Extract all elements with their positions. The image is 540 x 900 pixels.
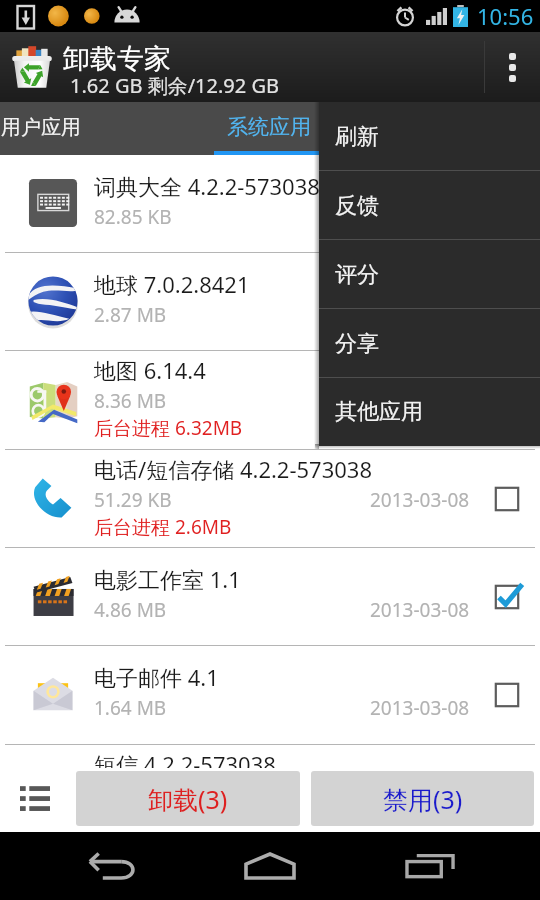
staticText: 后台进程 6.32MB xyxy=(94,415,243,441)
button[interactable]: 分享 xyxy=(319,309,540,378)
button[interactable]: 系统应用 xyxy=(214,102,324,155)
button[interactable]: 地球 7.0.2.8421 xyxy=(0,253,540,350)
staticText: 51.29 KB xyxy=(94,487,172,513)
staticText: 评分 xyxy=(335,261,379,289)
staticText: 电子邮件 4.1 xyxy=(94,662,540,692)
staticText: 反馈 xyxy=(335,192,379,220)
button[interactable]: 电影工作室 1.1 xyxy=(0,548,540,645)
staticText: 其他应用 xyxy=(335,398,423,426)
staticText: 卸载(3) xyxy=(148,782,228,816)
button[interactable]: 禁用(3) xyxy=(311,771,534,826)
button[interactable]: 电话/短信存储 4.2.2-573038 xyxy=(0,450,540,547)
staticText: 短信 4.2.2-573038 xyxy=(94,749,540,768)
staticText: 2013-03-08 xyxy=(370,695,470,721)
button[interactable]: Select app xyxy=(483,482,531,515)
button[interactable]: 反馈 xyxy=(319,171,540,240)
staticText: 2013-03-08 xyxy=(370,597,470,623)
staticText: 系统应用 xyxy=(227,114,311,140)
button[interactable]: More options xyxy=(485,32,540,102)
staticText: 卸载专家 xyxy=(63,42,171,76)
staticText: 地图 6.14.4 xyxy=(94,355,540,385)
button[interactable]: 用户应用 xyxy=(0,102,214,155)
button[interactable]: List options xyxy=(0,768,76,832)
button[interactable]: 卸载(3) xyxy=(76,771,300,826)
staticText: 10:56 xyxy=(477,1,534,31)
staticText: 刷新 xyxy=(335,123,379,151)
staticText: 4.86 MB xyxy=(94,597,167,623)
staticText: 禁用(3) xyxy=(383,782,463,816)
staticText: 1.62 GB 剩余/12.92 GB xyxy=(70,72,279,99)
staticText: 8.36 MB xyxy=(94,388,167,414)
staticText: 电话/短信存储 4.2.2-573038 xyxy=(94,454,540,484)
staticText: 2013-03-08 xyxy=(370,487,470,513)
button[interactable]: 刷新 xyxy=(319,102,540,171)
button[interactable]: Home xyxy=(180,832,360,900)
staticText: 1.64 MB xyxy=(94,695,167,721)
button[interactable]: 电子邮件 4.1 xyxy=(0,646,540,743)
button[interactable]: 评分 xyxy=(319,240,540,309)
button[interactable]: Select app xyxy=(483,678,531,711)
button[interactable]: Back xyxy=(0,832,180,900)
button[interactable]: Select app xyxy=(483,580,531,613)
staticText: 后台进程 2.6MB xyxy=(94,514,232,540)
staticText: 2.87 MB xyxy=(94,302,167,328)
staticText: 地球 7.0.2.8421 xyxy=(94,269,540,299)
button[interactable]: 词典大全 4.2.2-573038 xyxy=(0,155,540,252)
button[interactable]: 地图 6.14.4 xyxy=(0,351,540,448)
button[interactable]: 短信 4.2.2-573038 xyxy=(0,745,540,768)
button[interactable]: Recent apps xyxy=(360,832,540,900)
staticText: 分享 xyxy=(335,330,379,358)
button[interactable]: 其他应用 xyxy=(319,378,540,446)
staticText: 用户应用 xyxy=(1,115,81,140)
staticText: 词典大全 4.2.2-573038 xyxy=(94,171,540,201)
staticText: 电影工作室 1.1 xyxy=(94,564,540,594)
staticText: 82.85 KB xyxy=(94,204,172,230)
